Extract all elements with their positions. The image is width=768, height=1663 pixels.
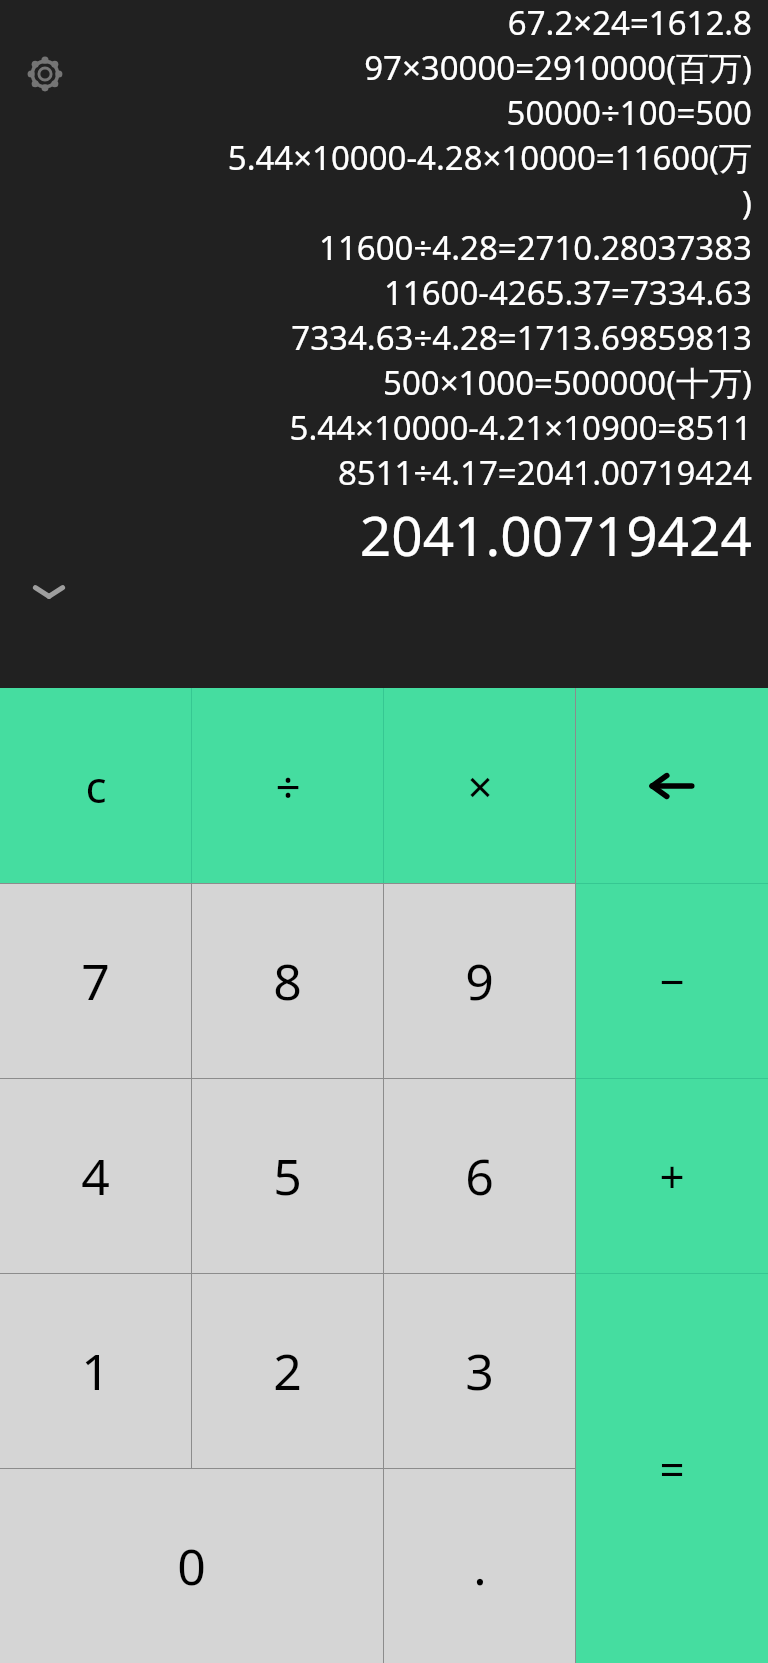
button[interactable]: 3 bbox=[384, 1274, 575, 1468]
button[interactable]: 0 bbox=[0, 1469, 383, 1663]
button[interactable]: 4 bbox=[0, 1079, 191, 1273]
staticText: = bbox=[659, 1439, 685, 1499]
staticText: 67.2×24=1612.8 bbox=[16, 0, 752, 45]
staticText: 2041.00719424 bbox=[16, 497, 752, 572]
staticText: 8 bbox=[273, 947, 302, 1015]
button[interactable]: = bbox=[576, 1274, 768, 1663]
button[interactable]: Expand history bbox=[22, 564, 76, 618]
button[interactable]: 8 bbox=[192, 884, 383, 1078]
button[interactable]: 7 bbox=[0, 884, 191, 1078]
staticText: 5 bbox=[273, 1142, 302, 1210]
button[interactable]: c bbox=[0, 688, 191, 883]
staticText: 5.44×10000-4.28×10000=11600(万 bbox=[16, 135, 752, 180]
staticText: 500×1000=500000(十万) bbox=[16, 360, 752, 405]
button[interactable]: 9 bbox=[384, 884, 575, 1078]
staticText: 0 bbox=[177, 1532, 206, 1600]
button[interactable]: . bbox=[384, 1469, 575, 1663]
button[interactable]: Settings bbox=[16, 45, 74, 103]
button[interactable]: Backspace bbox=[576, 688, 768, 883]
staticText: 9 bbox=[465, 947, 494, 1015]
button[interactable]: − bbox=[576, 884, 768, 1078]
button[interactable]: 1 bbox=[0, 1274, 191, 1468]
staticText: 4 bbox=[81, 1142, 110, 1210]
button[interactable]: 5 bbox=[192, 1079, 383, 1273]
staticText: + bbox=[659, 1146, 685, 1206]
staticText: 1 bbox=[81, 1337, 110, 1405]
staticText: × bbox=[467, 756, 493, 816]
button[interactable]: × bbox=[384, 688, 575, 883]
staticText: 11600÷4.28=2710.28037383 bbox=[16, 225, 752, 270]
staticText: 50000÷100=500 bbox=[16, 90, 752, 135]
button[interactable]: ÷ bbox=[192, 688, 383, 883]
staticText: ÷ bbox=[275, 756, 301, 816]
button[interactable]: 6 bbox=[384, 1079, 575, 1273]
staticText: 5.44×10000-4.21×10900=8511 bbox=[16, 405, 752, 450]
staticText: 3 bbox=[465, 1337, 494, 1405]
staticText: 8511÷4.17=2041.00719424 bbox=[16, 450, 752, 495]
staticText: 97×30000=2910000(百万) bbox=[16, 45, 752, 90]
button[interactable]: 2 bbox=[192, 1274, 383, 1468]
staticText: 6 bbox=[465, 1142, 494, 1210]
staticText: − bbox=[659, 951, 685, 1011]
staticText: c bbox=[85, 756, 107, 816]
staticText: . bbox=[473, 1532, 487, 1600]
staticText: ) bbox=[16, 180, 752, 225]
staticText: 7 bbox=[81, 947, 110, 1015]
button[interactable]: + bbox=[576, 1079, 768, 1273]
staticText: 11600-4265.37=7334.63 bbox=[16, 270, 752, 315]
staticText: 7334.63÷4.28=1713.69859813 bbox=[16, 315, 752, 360]
staticText: 2 bbox=[273, 1337, 302, 1405]
